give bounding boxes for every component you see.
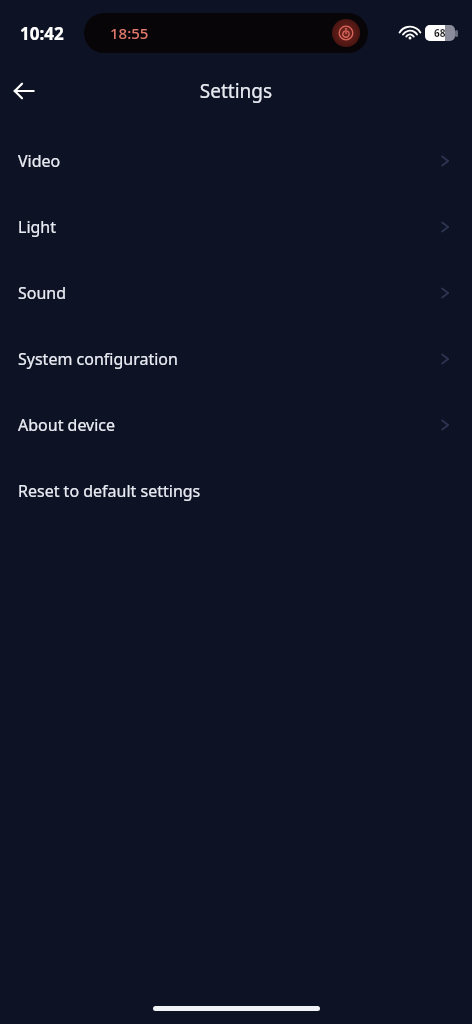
staticText: Light <box>18 216 57 238</box>
staticText: 68 <box>434 26 446 40</box>
staticText: Settings <box>0 78 472 104</box>
button[interactable]: Light <box>0 194 472 260</box>
staticText: Video <box>18 150 61 172</box>
staticText: 18:55 <box>110 23 149 43</box>
button[interactable]: Sound <box>0 260 472 326</box>
button[interactable]: Back <box>0 67 48 115</box>
staticText: 10:42 <box>20 22 64 45</box>
staticText: Reset to default settings <box>18 480 201 502</box>
button[interactable]: Power <box>332 19 360 47</box>
button[interactable]: System configuration <box>0 326 472 392</box>
staticText: About device <box>18 414 116 436</box>
staticText: System configuration <box>18 348 178 370</box>
button[interactable]: Reset to default settings <box>0 458 472 524</box>
button[interactable]: About device <box>0 392 472 458</box>
button[interactable]: Video <box>0 128 472 194</box>
staticText: Sound <box>18 282 67 304</box>
button[interactable]: 18:55 <box>84 13 368 53</box>
